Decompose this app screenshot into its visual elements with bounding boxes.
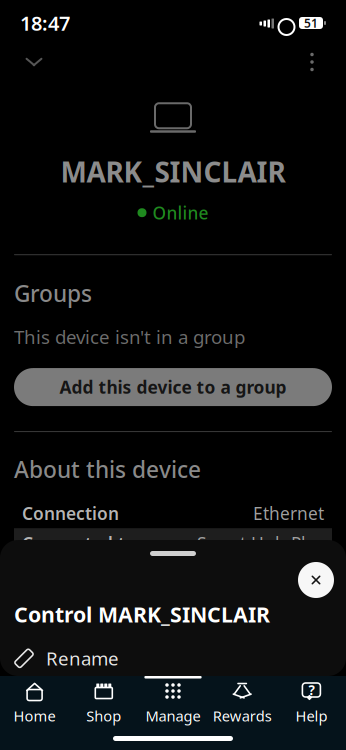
staticText: Ethernet [253, 502, 324, 525]
staticText: 18:47 [20, 10, 70, 36]
staticText: Add this device to a group [59, 376, 286, 399]
staticText: About this device [14, 454, 201, 484]
staticText: Connection [22, 502, 119, 525]
staticText: This device isn't in a group [14, 324, 245, 349]
staticText: Rename [46, 646, 119, 671]
staticText: MARK_SINCLAIR [60, 153, 285, 190]
staticText: Home [14, 706, 56, 725]
staticText: ? [308, 681, 314, 699]
button[interactable]: More options [289, 40, 335, 84]
staticText: Control MARK_SINCLAIR [14, 600, 270, 628]
staticText: Smart Hub Plus [197, 532, 324, 555]
staticText: Online [152, 201, 208, 224]
staticText: Connected to [22, 532, 136, 555]
staticText: Help [295, 706, 327, 725]
staticText: Manage [145, 706, 200, 725]
button[interactable]: Shop [69, 676, 138, 728]
button[interactable]: Collapse [11, 40, 57, 84]
staticText: 51 [304, 15, 318, 31]
staticText: Rewards [213, 706, 272, 725]
staticText: Groups [14, 278, 92, 308]
button[interactable]: Add this device to a group [14, 368, 332, 406]
button[interactable]: Manage [138, 676, 208, 728]
button[interactable]: Home [0, 676, 69, 728]
button[interactable]: ? [277, 676, 346, 728]
staticText: Shop [86, 706, 121, 725]
button[interactable]: Rewards [208, 676, 277, 728]
button[interactable]: Close [298, 562, 334, 598]
button[interactable]: Rename [0, 641, 346, 675]
